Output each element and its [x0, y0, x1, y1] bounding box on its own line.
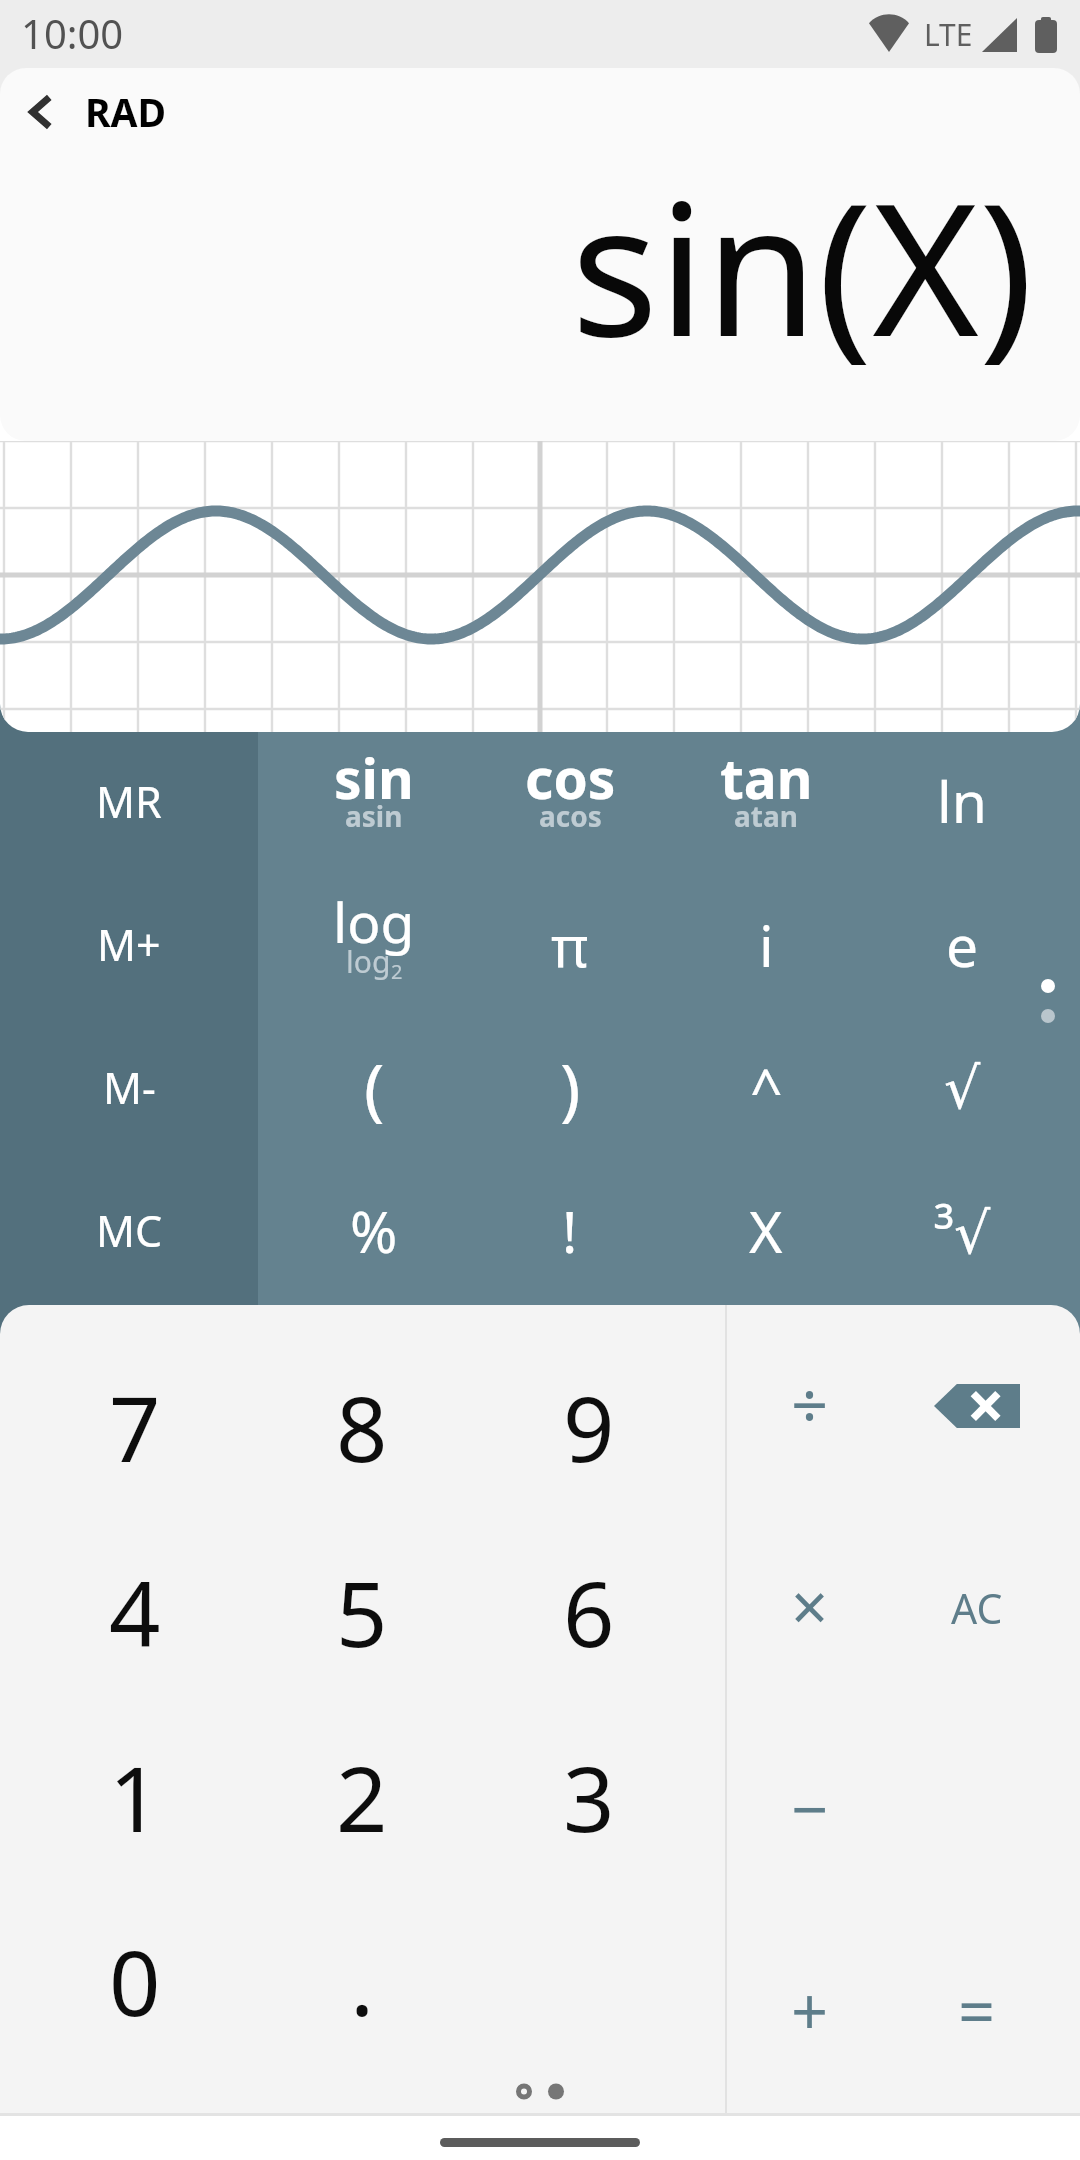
button[interactable]: M- — [0, 1019, 258, 1162]
staticText: cos — [525, 740, 616, 815]
button[interactable]: e — [864, 876, 1060, 1019]
button[interactable]: ) — [472, 1019, 668, 1162]
staticText: e — [946, 906, 979, 984]
staticText: MR — [96, 772, 162, 831]
button[interactable]: MR — [0, 732, 258, 876]
staticText: ) — [560, 1040, 581, 1133]
staticText: M+ — [97, 915, 161, 974]
button[interactable]: Function page indicator — [1023, 961, 1073, 1041]
button[interactable]: Back — [0, 68, 88, 156]
button[interactable]: + — [727, 1911, 893, 2113]
staticText: atan — [734, 797, 798, 835]
button[interactable]: M+ — [0, 876, 258, 1019]
staticText: MC — [96, 1201, 163, 1260]
staticText: ³√ — [934, 1192, 991, 1270]
button[interactable]: 3 — [476, 1708, 702, 1892]
button[interactable]: 0 — [22, 1892, 248, 2076]
button[interactable]: log — [276, 876, 472, 1019]
button[interactable]: − — [727, 1709, 893, 1911]
button[interactable]: % — [276, 1162, 472, 1305]
button[interactable]: 1 — [22, 1708, 248, 1892]
staticText: asin — [345, 797, 403, 835]
staticText: sin — [334, 740, 414, 815]
staticText: 8 — [336, 1366, 388, 1489]
button[interactable]: 4 — [22, 1523, 248, 1707]
button[interactable]: sin — [276, 732, 472, 876]
other: Backspace — [934, 1384, 1020, 1428]
staticText: 9 — [563, 1366, 615, 1489]
staticText: i — [759, 906, 774, 984]
staticText: 3 — [563, 1736, 615, 1859]
staticText: LTE — [924, 14, 973, 55]
button[interactable]: MC — [0, 1162, 258, 1305]
staticText: ^ — [750, 1049, 783, 1127]
button[interactable]: . — [249, 1892, 475, 2076]
button[interactable]: ( — [276, 1019, 472, 1162]
button[interactable]: × — [727, 1507, 893, 1709]
button[interactable]: 5 — [249, 1523, 475, 1707]
button[interactable]: 9 — [476, 1338, 702, 1522]
button[interactable]: π — [472, 876, 668, 1019]
staticText: 2 — [336, 1736, 388, 1859]
button[interactable]: RAD — [75, 68, 177, 156]
button[interactable]: ^ — [668, 1019, 864, 1162]
staticText: sin(X) — [571, 141, 1034, 389]
staticText: ÷ — [791, 1360, 829, 1449]
staticText: X — [749, 1192, 783, 1270]
button[interactable]: 6 — [476, 1523, 702, 1707]
staticText: 10:00 — [21, 6, 124, 60]
button[interactable]: ³√ — [864, 1162, 1060, 1305]
staticText: acos — [539, 797, 602, 835]
staticText: π — [551, 906, 589, 984]
button[interactable]: Backspace — [894, 1305, 1060, 1507]
button[interactable]: 7 — [22, 1338, 248, 1522]
button[interactable]: cos — [472, 732, 668, 876]
staticText: M- — [103, 1058, 156, 1117]
button[interactable]: 2 — [249, 1708, 475, 1892]
staticText: AC — [951, 1580, 1003, 1636]
staticText: RAD — [85, 85, 167, 138]
button[interactable]: ! — [472, 1162, 668, 1305]
button[interactable]: Keypad page indicator — [496, 2063, 584, 2113]
button[interactable]: = — [894, 1911, 1060, 2113]
staticText: ! — [562, 1192, 578, 1270]
staticText: 1 — [109, 1736, 161, 1859]
staticText: . — [350, 1920, 375, 2043]
button[interactable]: i — [668, 876, 864, 1019]
staticText: 0 — [109, 1920, 161, 2043]
staticText: × — [791, 1562, 829, 1651]
staticText: log — [346, 941, 391, 982]
staticText: log — [333, 884, 415, 959]
button[interactable]: tan — [668, 732, 864, 876]
staticText: − — [791, 1764, 829, 1853]
staticText: % — [350, 1192, 398, 1270]
staticText: tan — [720, 740, 813, 815]
staticText: 4 — [109, 1551, 161, 1674]
staticText: √ — [944, 1055, 981, 1121]
staticText: ln — [937, 762, 987, 840]
button[interactable]: √ — [864, 1019, 1060, 1162]
staticText: = — [958, 1966, 996, 2055]
button[interactable]: ÷ — [727, 1305, 893, 1507]
staticText: 6 — [563, 1551, 615, 1674]
button[interactable]: AC — [894, 1507, 1060, 1709]
staticText: 5 — [336, 1551, 388, 1674]
button[interactable]: ln — [864, 732, 1060, 876]
button[interactable]: 8 — [249, 1338, 475, 1522]
staticText: 7 — [109, 1366, 161, 1489]
staticText: ( — [364, 1040, 385, 1133]
button[interactable]: X — [668, 1162, 864, 1305]
staticText: + — [791, 1966, 829, 2055]
staticText: 2 — [391, 958, 403, 985]
